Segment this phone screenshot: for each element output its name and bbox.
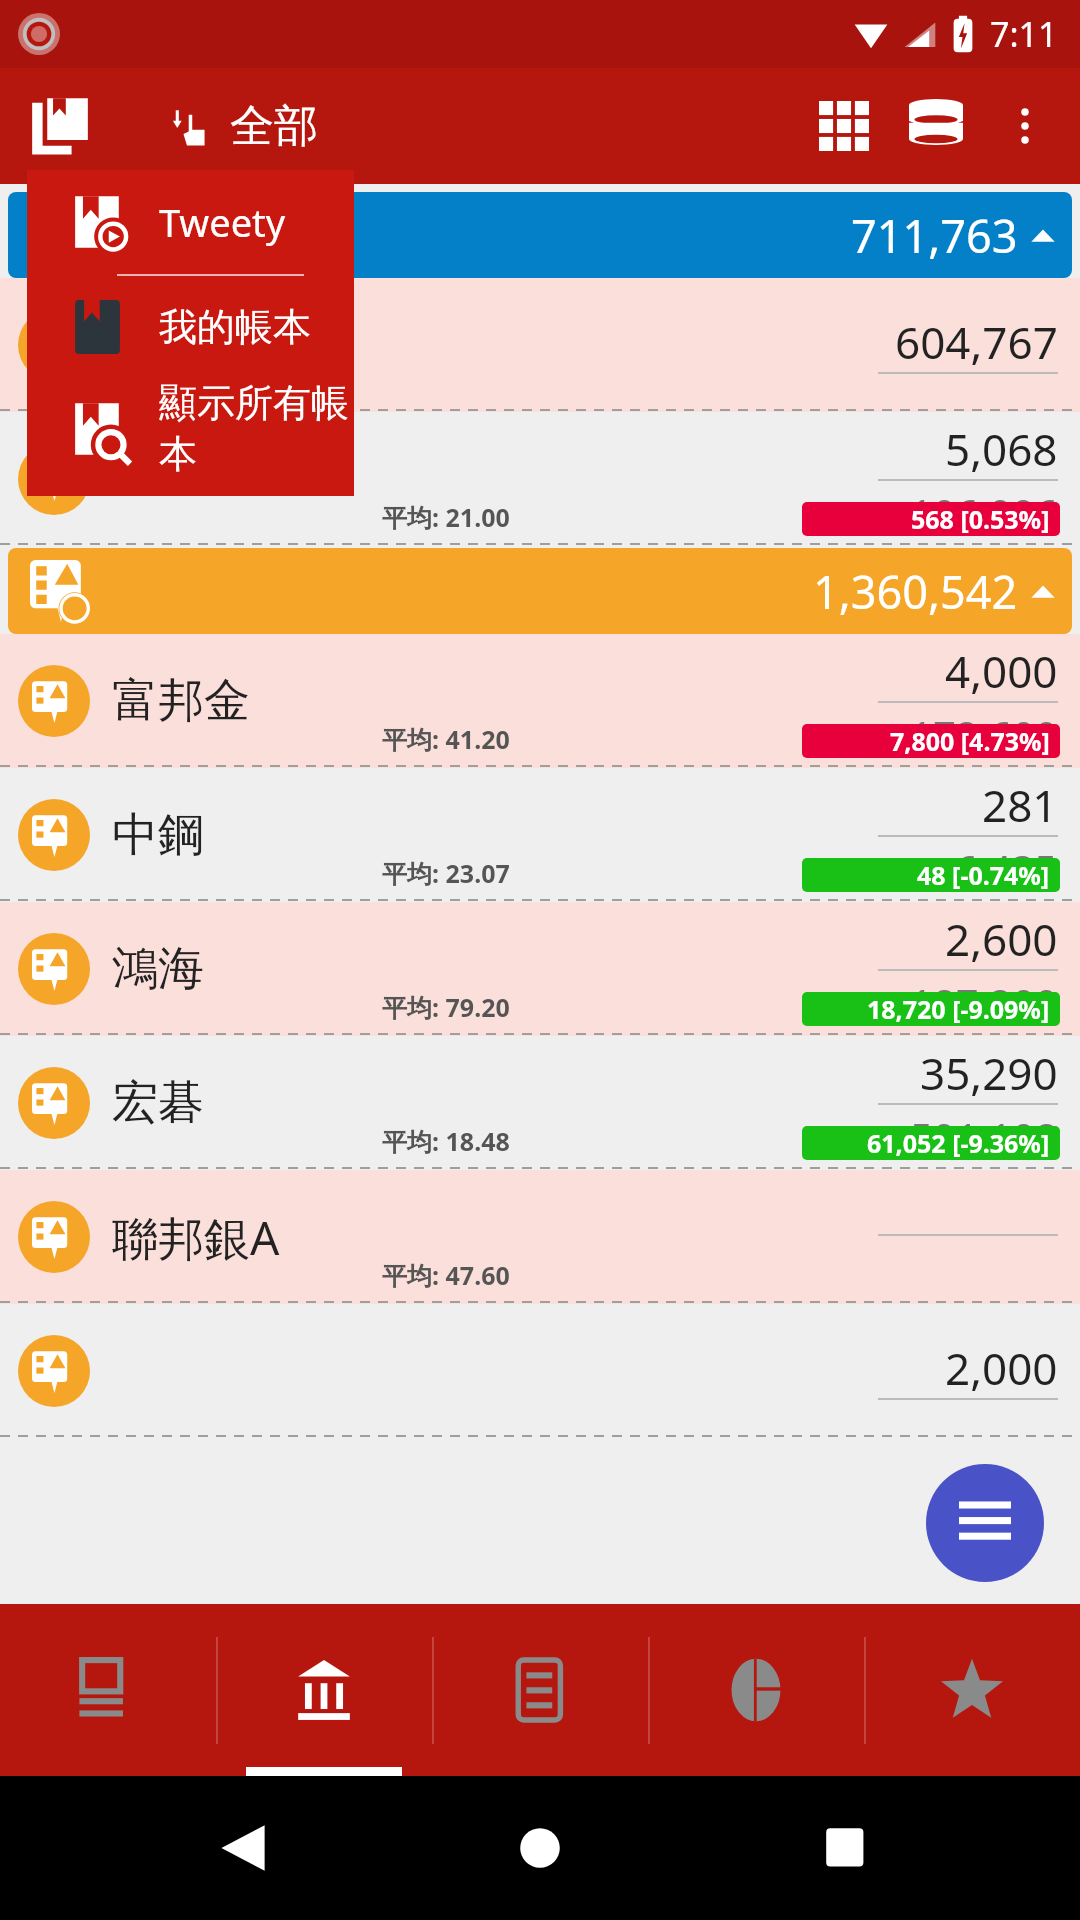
button[interactable]: 中鋼 <box>0 768 1080 902</box>
staticText: 2,000 <box>945 1338 1058 1398</box>
staticText: 鴻海 <box>112 940 204 998</box>
staticText: 顯示所有帳本 <box>159 379 354 479</box>
staticText: 106,996 <box>910 486 1058 540</box>
staticText: 711,763 <box>851 205 1018 266</box>
staticText: 平均: 47.60 <box>382 1258 510 1292</box>
button[interactable]: 5,068 <box>0 412 1080 546</box>
button[interactable]: Charts <box>648 1604 864 1776</box>
button[interactable]: Books <box>22 88 98 164</box>
staticText: $ <box>888 507 902 540</box>
staticText: 187,200 <box>910 976 1058 1030</box>
staticText: 全部 <box>230 99 318 154</box>
staticText: 604,767 <box>895 312 1058 372</box>
staticText: 中鋼 <box>112 806 204 864</box>
staticText: $ <box>888 997 902 1030</box>
button[interactable]: 鴻海 <box>0 902 1080 1036</box>
button[interactable]: Tweety <box>27 170 354 274</box>
staticText: 5,068 <box>945 419 1058 479</box>
button[interactable]: 富邦金 <box>0 634 1080 768</box>
staticText: 平均: 18.48 <box>382 1124 510 1158</box>
staticText: 1,360,542 <box>813 561 1018 622</box>
staticText: 2,600 <box>945 909 1058 969</box>
staticText: 平均: 41.20 <box>382 722 510 756</box>
staticText: 聯邦銀A <box>112 1206 280 1269</box>
button[interactable]: 2,000 <box>0 1304 1080 1438</box>
staticText: 61,052 [-9.36%] <box>867 1126 1050 1160</box>
button[interactable]: 604,767 <box>0 278 1080 412</box>
button[interactable]: Bank <box>216 1604 432 1776</box>
staticText: 宏碁 <box>112 1074 204 1132</box>
staticText: 平均: 79.20 <box>382 990 510 1024</box>
staticText: 35,290 <box>920 1043 1058 1103</box>
button[interactable]: Accounts <box>0 1604 216 1776</box>
staticText: 7,800 [4.73%] <box>890 724 1050 758</box>
button[interactable]: More options <box>982 83 1068 169</box>
button[interactable]: 宏碁 <box>0 1036 1080 1170</box>
button[interactable]: Favorites <box>864 1604 1080 1776</box>
staticText: $ <box>888 1131 902 1164</box>
button[interactable]: Grid <box>798 80 890 172</box>
staticText: 平均: 21.00 <box>382 500 510 534</box>
staticText: 7:11 <box>990 11 1058 57</box>
staticText: 6,435 <box>955 842 1058 896</box>
staticText: 富邦金 <box>112 672 250 730</box>
button[interactable]: 顯示所有帳本 <box>27 378 354 480</box>
staticText: 平均: 23.07 <box>382 856 510 890</box>
button[interactable]: Menu <box>926 1464 1044 1582</box>
button[interactable]: Records <box>432 1604 648 1776</box>
staticText: 591,108 <box>910 1110 1058 1164</box>
button[interactable]: Database <box>890 80 982 172</box>
staticText: 4,000 <box>945 641 1058 701</box>
staticText: 48 [-0.74%] <box>917 858 1050 892</box>
staticText: 568 [0.53%] <box>911 502 1050 536</box>
button[interactable]: 我的帳本 <box>27 276 354 378</box>
staticText: Tweety <box>159 196 286 248</box>
staticText: 281 <box>982 775 1058 835</box>
staticText: 我的帳本 <box>159 303 311 351</box>
staticText: $ <box>888 729 902 762</box>
staticText: 172,600 <box>910 708 1058 762</box>
staticText: $ <box>933 863 947 896</box>
button[interactable]: 711,763 <box>8 192 1072 278</box>
button[interactable]: 1,360,542 <box>8 548 1072 634</box>
button[interactable]: 聯邦銀A <box>0 1170 1080 1304</box>
staticText: 18,720 [-9.09%] <box>867 992 1050 1026</box>
